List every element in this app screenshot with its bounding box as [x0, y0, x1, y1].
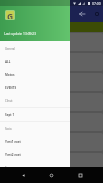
staticText: Screens: [5, 166, 15, 170]
staticText: ALL: [5, 60, 11, 64]
staticText: G: [7, 11, 14, 19]
staticText: Sept 1: [5, 113, 15, 117]
button[interactable]: [0, 73, 103, 91]
staticText: Clinut: [5, 99, 13, 103]
button[interactable]: [0, 133, 103, 151]
button[interactable]: [0, 113, 103, 131]
button[interactable]: [0, 53, 103, 71]
button[interactable]: Yvnt2 exet: [0, 148, 70, 161]
button[interactable]: Back: [76, 6, 88, 22]
staticText: Last update 13:09:23: [4, 31, 37, 35]
button[interactable]: [0, 93, 103, 111]
button[interactable]: Recents: [73, 167, 87, 183]
staticText: Motos: [5, 73, 15, 77]
button[interactable]: Settings: [92, 6, 102, 22]
button[interactable]: Sept 1: [0, 108, 70, 121]
staticText: EVENTS: [5, 86, 17, 90]
button[interactable]: EVENTS: [0, 81, 70, 94]
button[interactable]: [0, 153, 103, 171]
button[interactable]: Yvnt1 exet: [0, 135, 70, 148]
button[interactable]: Home: [44, 167, 58, 183]
button[interactable]: ALL: [0, 55, 70, 68]
staticText: Yvnt2 exet: [5, 153, 21, 157]
button[interactable]: Motos: [0, 68, 70, 81]
staticText: 07:00: [92, 1, 101, 6]
button[interactable]: Clinut: [0, 94, 70, 107]
button[interactable]: Socia: [0, 122, 70, 135]
staticText: Yvnt1 exet: [5, 140, 21, 144]
staticText: Socia: [5, 127, 12, 131]
staticText: General: [5, 47, 15, 51]
button[interactable]: Screens: [0, 161, 70, 174]
button[interactable]: [0, 33, 103, 51]
button[interactable]: Back: [16, 167, 30, 183]
button[interactable]: General: [0, 42, 70, 55]
button[interactable]: [0, 173, 103, 182]
